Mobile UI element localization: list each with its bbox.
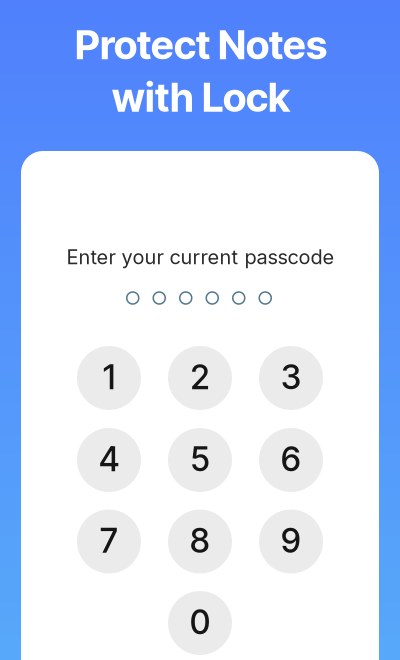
staticText: 8	[190, 520, 210, 561]
button[interactable]: 7	[77, 509, 141, 573]
staticText: 1	[103, 357, 115, 397]
button[interactable]: 8	[168, 509, 232, 573]
staticText: 6	[281, 439, 301, 479]
button[interactable]: 3	[259, 346, 323, 410]
staticText: Enter your current passcode	[66, 245, 334, 269]
button[interactable]: 0	[168, 591, 232, 655]
button[interactable]: 4	[77, 428, 141, 492]
staticText: 2	[190, 357, 209, 397]
staticText: Protect Notes	[75, 21, 327, 69]
button[interactable]: 9	[259, 509, 323, 573]
staticText: 5	[190, 439, 209, 479]
staticText: with Lock	[112, 73, 290, 121]
button[interactable]: 1	[77, 346, 141, 410]
staticText: 7	[100, 520, 118, 561]
staticText: 4	[99, 439, 119, 479]
button[interactable]: 6	[259, 428, 323, 492]
button[interactable]: 5	[168, 428, 232, 492]
button[interactable]: 2	[168, 346, 232, 410]
staticText: 3	[281, 357, 301, 397]
staticText: 0	[190, 602, 210, 642]
staticText: 9	[281, 520, 301, 561]
